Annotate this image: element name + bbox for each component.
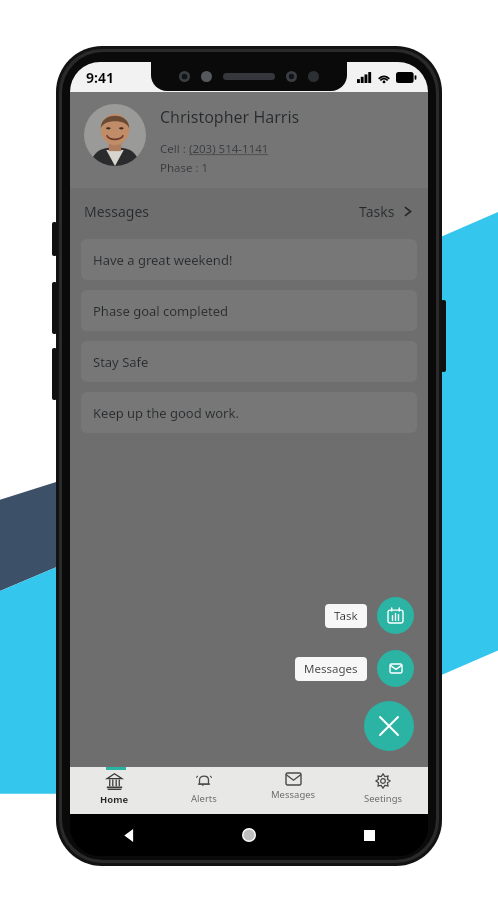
button[interactable]: Home — [70, 767, 159, 814]
button[interactable]: Home — [236, 822, 262, 848]
staticText: Have a great weekend! — [93, 251, 233, 269]
button[interactable]: Task — [325, 604, 367, 628]
staticText: 9:41 — [86, 68, 114, 87]
staticText: Christopher Harris — [160, 106, 300, 128]
button[interactable]: Recents — [356, 822, 382, 848]
staticText: Messages — [271, 788, 316, 801]
button[interactable]: Messages — [248, 767, 338, 814]
button[interactable]: Stay Safe — [81, 341, 417, 382]
button[interactable]: Tasks — [359, 202, 414, 221]
button[interactable]: Close menu — [364, 701, 414, 751]
staticText: Task — [334, 608, 358, 624]
staticText: Messages — [304, 661, 358, 677]
staticText: Alerts — [191, 792, 217, 805]
staticText: Stay Safe — [93, 353, 149, 371]
button[interactable]: Have a great weekend! — [81, 239, 417, 280]
button[interactable]: Task — [377, 597, 414, 634]
staticText: Cell : — [160, 141, 189, 157]
staticText: Home — [100, 793, 129, 806]
button[interactable]: Seetings — [338, 767, 428, 814]
button[interactable]: Messages — [84, 202, 150, 221]
button[interactable]: Phase goal completed — [81, 290, 417, 331]
staticText: Keep up the good work. — [93, 404, 239, 422]
staticText: Tasks — [359, 202, 395, 221]
button[interactable]: Alerts — [159, 767, 248, 814]
button[interactable]: Messages — [295, 657, 367, 681]
staticText: Phase goal completed — [93, 302, 228, 320]
button[interactable]: Christopher Harris — [84, 104, 414, 176]
button[interactable]: Messages — [377, 650, 414, 687]
staticText: Seetings — [364, 792, 403, 805]
button[interactable]: Back — [116, 822, 142, 848]
staticText: Phase : 1 — [160, 160, 209, 176]
button[interactable]: (203) 514-1141 — [189, 141, 269, 157]
button[interactable]: Keep up the good work. — [81, 392, 417, 433]
